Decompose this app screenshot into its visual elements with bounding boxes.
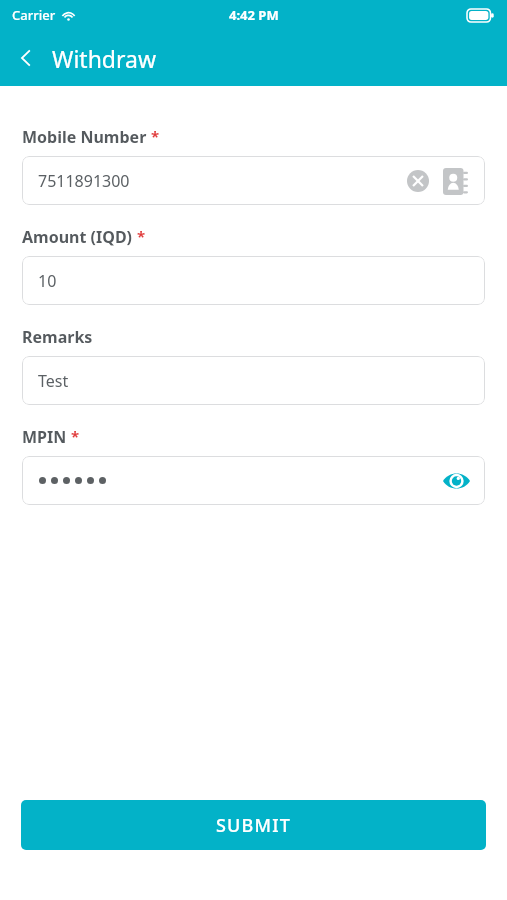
staticText: Amount (IQD) (22, 226, 133, 248)
staticText: 10 (38, 270, 57, 292)
staticText: * (71, 426, 80, 446)
button[interactable]: Test (22, 356, 485, 405)
button[interactable]: Clear (401, 164, 435, 198)
button[interactable]: 10 (22, 256, 485, 305)
staticText: * (137, 226, 146, 246)
button[interactable]: Back (0, 32, 52, 84)
staticText: * (151, 126, 160, 146)
staticText: MPIN (22, 426, 67, 448)
staticText: Withdraw (52, 43, 157, 74)
button[interactable]: Show MPIN (435, 460, 477, 502)
button[interactable]: Choose contact (437, 163, 473, 199)
button[interactable]: 7511891300 (22, 156, 485, 205)
button[interactable]: SUBMIT (21, 800, 486, 850)
staticText: SUBMIT (216, 813, 292, 838)
button[interactable]: Show MPIN (22, 456, 485, 505)
staticText: Carrier (12, 6, 56, 24)
staticText: 4:42 PM (229, 6, 279, 24)
staticText: Test (38, 370, 69, 392)
staticText: 7511891300 (38, 170, 130, 192)
staticText: Mobile Number (22, 126, 147, 148)
staticText: Remarks (22, 326, 93, 348)
